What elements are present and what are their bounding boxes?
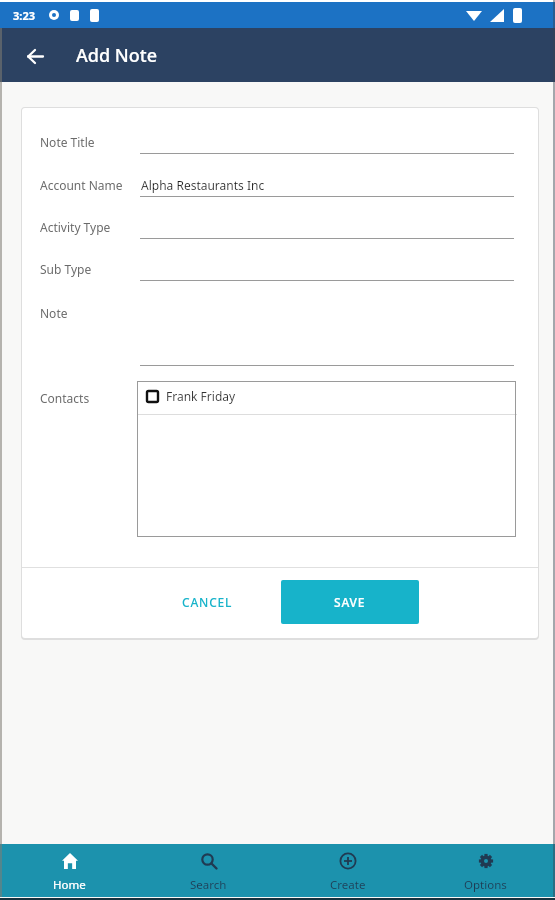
- button[interactable]: [18, 39, 52, 73]
- staticText: Note Title: [40, 134, 95, 150]
- button[interactable]: CANCEL: [167, 580, 247, 624]
- staticText: Search: [190, 877, 227, 893]
- staticText: Add Note: [76, 43, 157, 68]
- staticText: Alpha Restaurants Inc: [141, 177, 265, 193]
- staticText: Home: [53, 877, 86, 893]
- staticText: Account Name: [40, 177, 123, 193]
- button[interactable]: SAVE: [281, 580, 419, 624]
- button[interactable]: Create: [278, 844, 417, 896]
- button[interactable]: Home: [0, 844, 139, 896]
- staticText: Frank Friday: [166, 388, 236, 404]
- staticText: Create: [330, 877, 366, 893]
- button[interactable]: Search: [139, 844, 278, 896]
- staticText: Options: [464, 877, 507, 893]
- staticText: CANCEL: [182, 594, 233, 610]
- staticText: Contacts: [40, 390, 90, 406]
- staticText: Note: [40, 305, 68, 321]
- staticText: Activity Type: [40, 219, 111, 235]
- staticText: SAVE: [334, 594, 366, 610]
- staticText: 3:23: [13, 8, 35, 23]
- staticText: Sub Type: [40, 261, 92, 277]
- button[interactable]: Frank Friday: [146, 388, 236, 404]
- button[interactable]: Options: [416, 844, 555, 896]
